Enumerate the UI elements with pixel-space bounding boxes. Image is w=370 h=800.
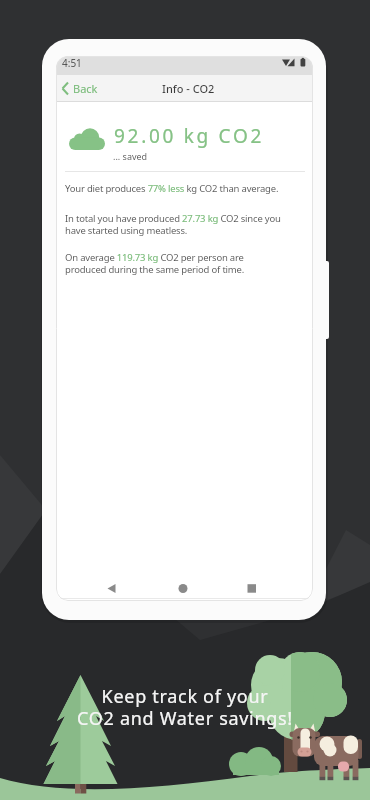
staticText: Your diet produces 77% less kg CO2 than … <box>65 182 279 195</box>
staticText: In total you have produced 27.73 kg CO2 … <box>65 212 281 236</box>
staticText: Info - CO2 <box>162 81 215 96</box>
staticText: 92.00 kg CO2 <box>114 123 265 149</box>
staticText: On average 119.73 kg CO2 per person are … <box>65 251 245 275</box>
button[interactable]: Back <box>56 75 313 102</box>
staticText: Back <box>73 81 98 96</box>
staticText: Keep track of your <box>0 684 370 709</box>
staticText: 4:51 <box>62 56 82 70</box>
staticText: CO2 and Water savings! <box>0 706 370 731</box>
staticText: ... saved <box>113 150 148 162</box>
